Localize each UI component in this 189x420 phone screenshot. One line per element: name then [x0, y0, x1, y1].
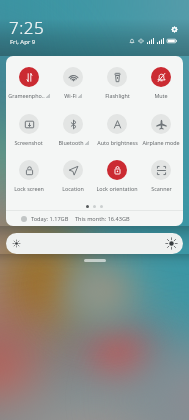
button[interactable]: Screenshot	[6, 101, 51, 147]
staticText: Location	[62, 185, 84, 192]
button[interactable]: Location	[51, 147, 95, 193]
staticText: Flashlight	[105, 92, 130, 99]
button[interactable]: Lock screen	[6, 147, 51, 193]
staticText: This month: 16.43GB	[75, 215, 130, 223]
staticText: Lock screen	[14, 185, 44, 192]
staticText: 7:25	[9, 16, 45, 39]
staticText: Fri, Apr 9	[10, 38, 36, 46]
button[interactable]: Scanner	[139, 147, 183, 193]
button[interactable]: Mute	[139, 56, 183, 100]
button[interactable]: Auto brightness	[95, 101, 139, 147]
button[interactable]: Today: 1.17GB	[6, 211, 183, 226]
staticText: Grameenpho..	[8, 92, 45, 99]
button[interactable]: Bluetooth	[51, 101, 95, 147]
button[interactable]: Lock orientation	[95, 147, 139, 193]
staticText: Screenshot	[14, 139, 43, 146]
staticText: Airplane mode	[142, 139, 180, 146]
staticText: Today: 1.17GB	[31, 215, 69, 223]
staticText: Lock orientation	[96, 185, 138, 192]
button[interactable]: Grameenpho..	[6, 56, 51, 100]
staticText: Wi-Fi	[64, 92, 77, 99]
staticText: Auto brightness	[97, 139, 138, 146]
button[interactable]: Flashlight	[95, 56, 139, 100]
button[interactable]: Wi-Fi	[51, 56, 95, 100]
staticText: Scanner	[151, 185, 172, 192]
button[interactable]: Airplane mode	[139, 101, 183, 147]
button[interactable]: Settings	[168, 23, 181, 36]
staticText: Mute	[154, 92, 168, 99]
button[interactable]: Brightness	[6, 233, 183, 254]
staticText: Bluetooth	[58, 139, 84, 146]
